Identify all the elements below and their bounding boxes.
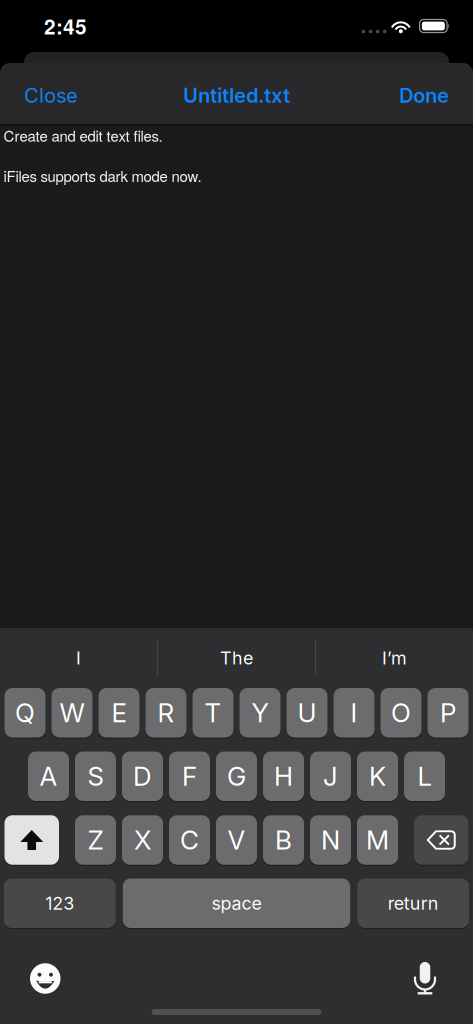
button[interactable]: Emoji: [30, 963, 60, 994]
button[interactable]: C: [169, 815, 210, 865]
button[interactable]: Y: [239, 688, 280, 737]
staticText: S: [87, 760, 103, 792]
staticText: I: [76, 647, 81, 669]
staticText: B: [275, 824, 292, 856]
staticText: D: [133, 760, 152, 792]
button[interactable]: Untitled.txt: [183, 83, 290, 108]
staticText: A: [39, 760, 57, 792]
button[interactable]: D: [122, 751, 163, 801]
button[interactable]: N: [310, 815, 351, 865]
staticText: U: [297, 697, 316, 728]
staticText: G: [227, 760, 246, 792]
staticText: E: [111, 697, 126, 728]
staticText: O: [391, 697, 411, 728]
button[interactable]: Q: [4, 688, 45, 737]
staticText: Close: [24, 83, 78, 108]
staticText: R: [157, 697, 174, 728]
staticText: J: [323, 760, 338, 792]
button[interactable]: W: [51, 688, 92, 737]
button[interactable]: V: [216, 815, 257, 865]
staticText: 2:45: [44, 11, 87, 41]
staticText: K: [369, 760, 386, 792]
staticText: iFiles supports dark mode now.: [3, 165, 201, 186]
staticText: 123: [45, 892, 74, 914]
button[interactable]: L: [404, 751, 445, 801]
staticText: N: [321, 824, 340, 856]
staticText: W: [59, 697, 84, 728]
button[interactable]: T: [192, 688, 233, 737]
button[interactable]: S: [75, 751, 116, 801]
button[interactable]: Close: [24, 83, 78, 108]
button[interactable]: return: [357, 878, 469, 928]
staticText: P: [440, 697, 456, 728]
staticText: H: [274, 760, 293, 792]
staticText: Y: [251, 697, 268, 728]
button[interactable]: I: [0, 628, 157, 688]
button[interactable]: E: [98, 688, 139, 737]
button[interactable]: P: [427, 688, 468, 737]
button[interactable]: M: [357, 815, 398, 865]
button[interactable]: B: [263, 815, 304, 865]
button[interactable]: I’m: [316, 628, 473, 688]
staticText: X: [134, 824, 151, 856]
staticText: T: [204, 697, 221, 728]
button[interactable]: R: [145, 688, 186, 737]
button[interactable]: U: [286, 688, 327, 737]
button[interactable]: Z: [75, 815, 116, 865]
staticText: L: [417, 760, 431, 792]
button[interactable]: K: [357, 751, 398, 801]
button[interactable]: J: [310, 751, 351, 801]
button[interactable]: Shift: [4, 815, 59, 865]
button[interactable]: Delete: [414, 815, 468, 865]
staticText: Done: [399, 83, 449, 108]
button[interactable]: H: [263, 751, 304, 801]
staticText: F: [182, 760, 197, 792]
staticText: return: [388, 892, 439, 914]
staticText: The: [220, 647, 253, 669]
staticText: Untitled.txt: [183, 83, 290, 108]
staticText: Create and edit text files.: [3, 124, 162, 146]
button[interactable]: X: [122, 815, 163, 865]
button[interactable]: A: [28, 751, 69, 801]
staticText: M: [366, 824, 389, 856]
button[interactable]: Done: [399, 83, 449, 108]
staticText: V: [227, 824, 245, 856]
button[interactable]: The: [158, 628, 315, 688]
button[interactable]: 123: [4, 878, 116, 928]
button[interactable]: Dictate: [413, 962, 437, 995]
button[interactable]: O: [380, 688, 421, 737]
button[interactable]: F: [169, 751, 210, 801]
staticText: C: [180, 824, 199, 856]
staticText: Z: [87, 824, 103, 856]
button[interactable]: G: [216, 751, 257, 801]
staticText: I: [350, 697, 357, 728]
button[interactable]: I: [333, 688, 374, 737]
button[interactable]: space: [123, 878, 350, 928]
staticText: Q: [15, 697, 35, 728]
staticText: space: [211, 892, 261, 914]
staticText: I’m: [382, 647, 407, 669]
